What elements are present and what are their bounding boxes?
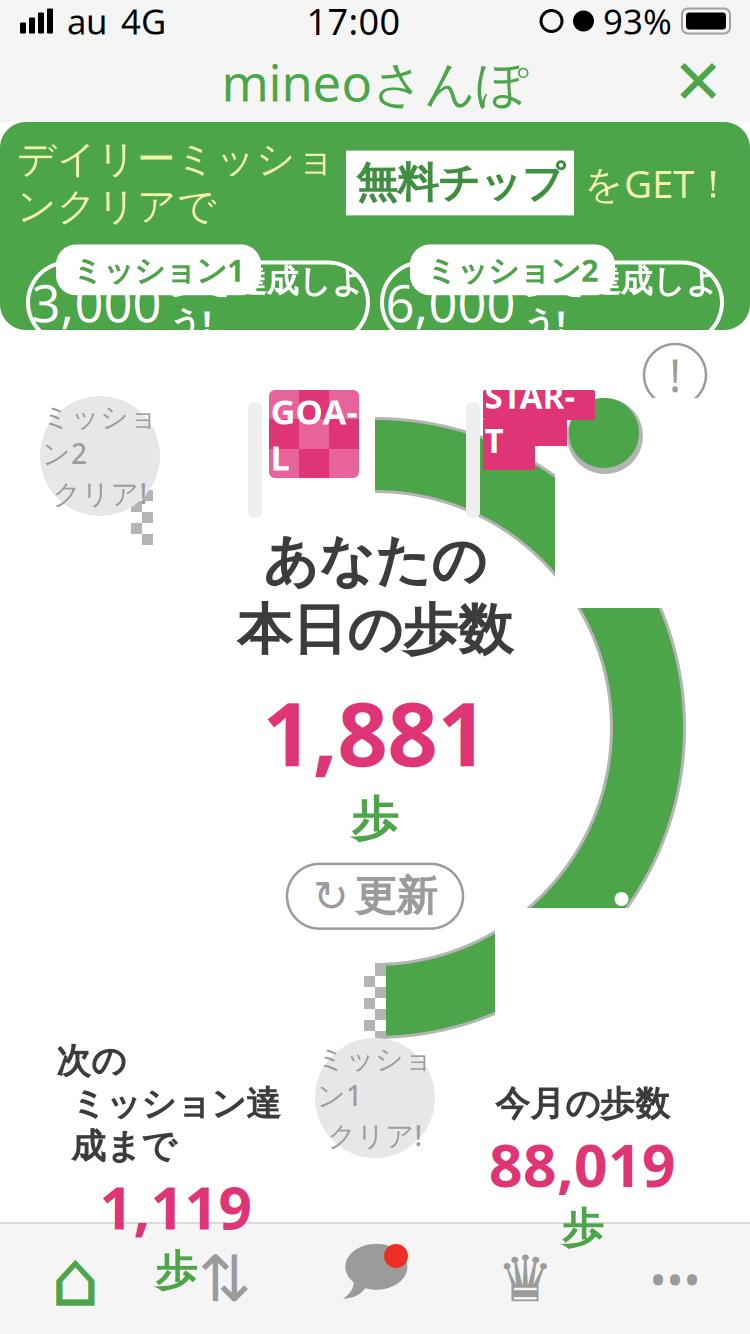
staticText: 88,019 (489, 1125, 676, 1203)
button[interactable]: 歩数データ (150, 1224, 300, 1334)
staticText: 🗩 (339, 1226, 410, 1332)
staticText: 歩 (155, 1246, 196, 1296)
staticText: START (484, 374, 575, 462)
staticText: ⌂ (50, 1235, 99, 1323)
staticText: ⇅ (198, 1243, 252, 1315)
staticText: デイリーミッションクリアで (17, 135, 336, 230)
staticText: 次の (56, 1040, 126, 1083)
staticText: 17:00 (306, 0, 400, 45)
button[interactable]: その他 (600, 1224, 750, 1334)
button[interactable]: ホーム (0, 1224, 150, 1334)
staticText: ミッション達成まで (71, 1083, 281, 1168)
staticText: GOAL (270, 388, 357, 480)
staticText: 93% (603, 0, 672, 44)
button[interactable]: 説明 (644, 344, 706, 406)
button[interactable]: ランキング (450, 1224, 600, 1334)
staticText: クリア! (327, 1117, 422, 1154)
staticText: あなたの (263, 527, 487, 594)
staticText: をGET！ (584, 157, 733, 209)
staticText: ! (669, 345, 681, 405)
staticText: 1,881 (262, 674, 487, 791)
staticText: mineoさんぽ (221, 48, 528, 116)
staticText: ↻ (313, 872, 349, 920)
staticText: ミッション1 (317, 1042, 433, 1114)
staticText: ミッション2 (426, 249, 599, 290)
staticText: クリア! (52, 475, 147, 512)
staticText: 1,119 (99, 1168, 252, 1246)
staticText: ミッション1 (72, 249, 245, 290)
button[interactable]: お知らせ、新着あり (300, 1224, 450, 1334)
staticText: 今月の歩数 (495, 1083, 670, 1125)
staticText: 歩 (562, 1203, 603, 1254)
staticText: ミッション2 (42, 400, 158, 472)
staticText: 歩を達成しよう! (169, 262, 364, 343)
staticText: ✕ (672, 47, 723, 117)
staticText: 4G (121, 0, 166, 44)
button[interactable]: ↻ (287, 864, 463, 929)
staticText: 歩 (351, 790, 398, 848)
staticText: ♛ (496, 1243, 553, 1315)
staticText: 本日の歩数 (237, 596, 513, 664)
button[interactable]: 閉じる (660, 44, 736, 120)
staticText: 6,000 (385, 269, 515, 336)
staticText: 3,000 (31, 269, 161, 336)
staticText: 無料チップ (356, 158, 564, 208)
staticText: ••• (649, 1249, 700, 1309)
staticText: au (67, 0, 107, 44)
staticText: 更新 (355, 871, 437, 922)
staticText: 歩を達成しよう! (523, 262, 718, 343)
